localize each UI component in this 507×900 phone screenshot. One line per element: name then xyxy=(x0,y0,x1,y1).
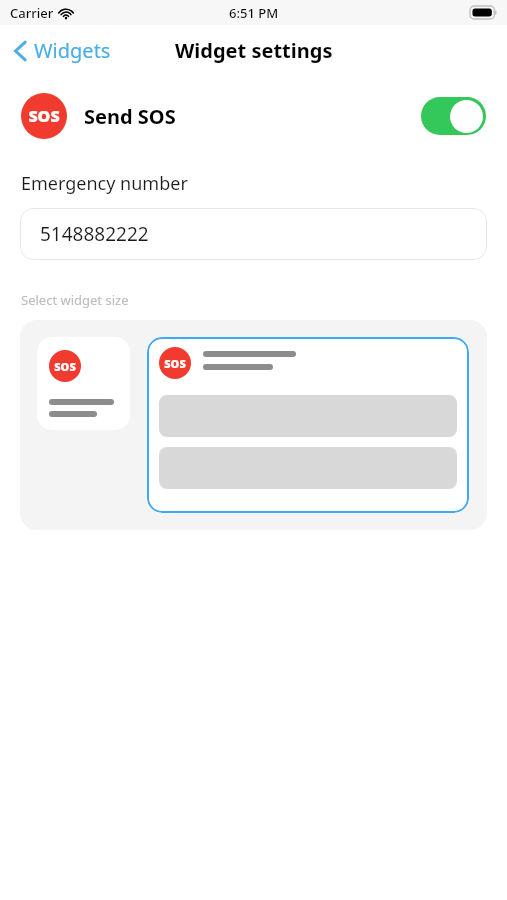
staticText: SOS xyxy=(28,105,60,127)
staticText: Send SOS xyxy=(84,103,176,130)
button[interactable]: Large widget size xyxy=(147,337,469,513)
staticText: SOS xyxy=(164,356,186,371)
staticText: Carrier xyxy=(10,4,54,22)
staticText: SOS xyxy=(54,359,76,374)
staticText: Emergency number xyxy=(21,171,188,196)
staticText: 5148882222 xyxy=(40,221,149,247)
button[interactable]: 5148882222 xyxy=(20,208,487,260)
staticText: 6:51 PM xyxy=(229,4,279,22)
button[interactable]: Send SOS toggle xyxy=(421,97,486,135)
staticText: Widgets xyxy=(34,37,111,64)
staticText: Select widget size xyxy=(21,291,129,309)
staticText: Widget settings xyxy=(175,37,333,64)
button[interactable]: Widgets xyxy=(0,31,121,70)
button[interactable]: Small widget size xyxy=(37,337,130,430)
